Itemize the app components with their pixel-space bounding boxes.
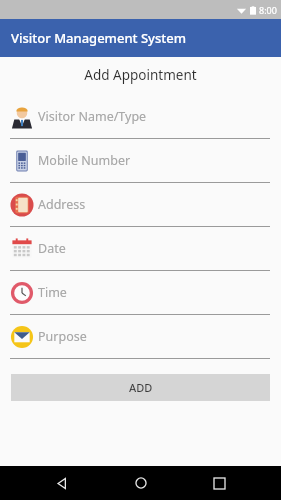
staticText: Purpose bbox=[38, 328, 87, 345]
button[interactable]: Recent apps bbox=[202, 466, 236, 500]
button[interactable]: Mobile Number bbox=[0, 139, 281, 183]
staticText: Date bbox=[38, 240, 66, 257]
button[interactable]: Visitor Name/Type bbox=[0, 95, 281, 139]
staticText: 8:00 bbox=[259, 4, 277, 16]
staticText: ADD bbox=[129, 380, 153, 395]
button[interactable]: Date bbox=[0, 227, 281, 271]
button[interactable]: Home bbox=[124, 466, 158, 500]
button[interactable]: Purpose bbox=[0, 315, 281, 359]
staticText: Mobile Number bbox=[38, 152, 131, 169]
staticText: Visitor Management System bbox=[11, 29, 186, 47]
staticText: Address bbox=[38, 196, 86, 213]
staticText: Time bbox=[38, 284, 67, 301]
staticText: Add Appointment bbox=[0, 66, 281, 84]
button[interactable]: Time bbox=[0, 271, 281, 315]
button[interactable]: Address bbox=[0, 183, 281, 227]
staticText: Visitor Name/Type bbox=[38, 108, 147, 125]
button[interactable]: ADD bbox=[11, 374, 270, 401]
button[interactable]: Back bbox=[45, 466, 79, 500]
